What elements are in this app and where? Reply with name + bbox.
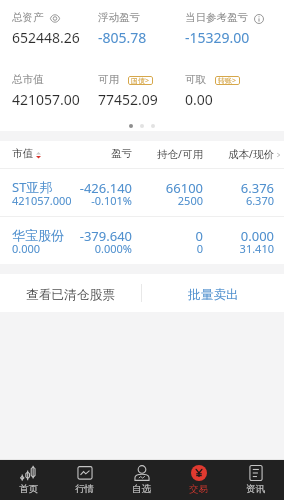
button[interactable]: 自选 — [113, 460, 170, 500]
button[interactable]: 成本/现价 — [203, 149, 274, 160]
staticText: 6.370 — [245, 196, 274, 208]
staticText: 行情 — [75, 485, 94, 495]
staticText: 77452.09 — [98, 93, 158, 108]
button[interactable]: 国债> — [128, 76, 153, 85]
staticText: 可用 — [98, 75, 119, 86]
staticText: 0.000 — [12, 244, 41, 256]
staticText: 总资产 — [12, 13, 44, 24]
staticText: 421057.00 — [12, 93, 80, 108]
staticText: 66100 — [165, 182, 203, 196]
staticText: -379.640 — [79, 230, 132, 244]
staticText: 总市值 — [12, 75, 44, 86]
button[interactable]: 转账> — [215, 76, 240, 85]
staticText: 交易 — [189, 485, 208, 495]
staticText: 31.410 — [239, 244, 274, 256]
staticText: 转账> — [218, 77, 237, 85]
staticText: 华宝股份 — [12, 230, 64, 244]
button[interactable]: 查看已清仓股票 — [0, 274, 141, 312]
staticText: 自选 — [132, 485, 151, 495]
button[interactable]: 行情 — [56, 460, 113, 500]
staticText: 当日参考盈亏 — [185, 13, 248, 24]
staticText: 2500 — [177, 196, 203, 208]
staticText: 查看已清仓股票 — [26, 289, 115, 303]
staticText: 资讯 — [246, 485, 265, 495]
button[interactable]: -379.640 — [0, 217, 284, 264]
button[interactable]: 市值 — [12, 149, 61, 160]
staticText: 0 — [196, 244, 203, 256]
staticText: 持仓/可用 — [132, 149, 203, 160]
staticText: 首页 — [19, 485, 38, 495]
staticText: -805.78 — [98, 31, 147, 46]
staticText: 批量卖出 — [188, 289, 239, 303]
staticText: 浮动盈亏 — [98, 13, 140, 24]
button[interactable]: -426.140 — [0, 169, 284, 216]
staticText: 国债> — [131, 77, 150, 85]
staticText: 652448.26 — [12, 31, 80, 46]
staticText: -426.140 — [79, 182, 132, 196]
staticText: 0.00 — [185, 93, 213, 108]
staticText: -0.101% — [91, 196, 132, 208]
staticText: 0 — [195, 230, 203, 244]
staticText: 421057.000 — [12, 196, 72, 208]
button[interactable]: 首页 — [0, 460, 56, 500]
staticText: 可取 — [185, 75, 206, 86]
staticText: 0.000 — [240, 230, 274, 244]
staticText: 盈亏 — [61, 149, 132, 160]
other: Toggle balance visibility — [50, 14, 60, 23]
other: Info — [254, 14, 264, 24]
staticText: 市值 — [12, 149, 33, 160]
button[interactable]: 资讯 — [227, 460, 284, 500]
staticText: 6.376 — [240, 182, 274, 196]
button[interactable]: 批量卖出 — [142, 274, 284, 312]
staticText: 0.000% — [94, 244, 132, 256]
button[interactable]: 交易 — [170, 460, 227, 500]
staticText: -15329.00 — [185, 31, 250, 46]
staticText: ST亚邦 — [12, 181, 53, 196]
